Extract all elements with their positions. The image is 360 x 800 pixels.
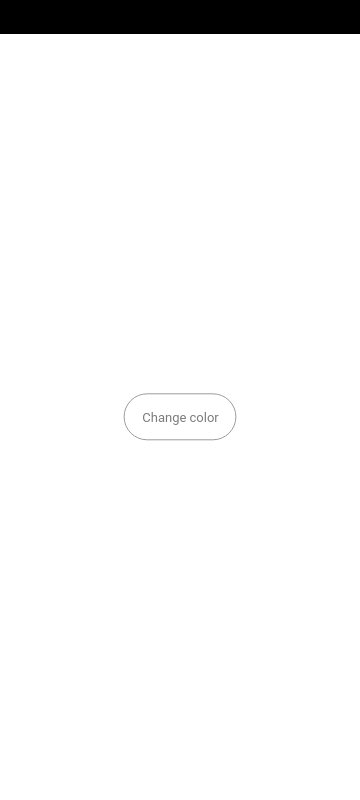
staticText: Change color xyxy=(142,410,219,425)
button[interactable]: Change color xyxy=(124,394,236,440)
